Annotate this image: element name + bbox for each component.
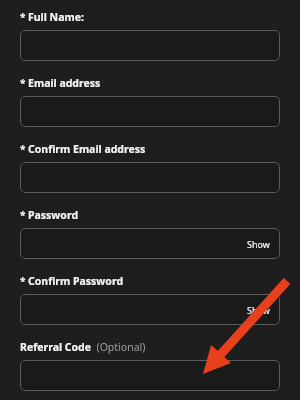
button[interactable]: Show [245, 302, 272, 318]
button[interactable] [20, 30, 280, 61]
button[interactable] [20, 360, 280, 391]
staticText: * Confirm Email address [20, 142, 146, 156]
staticText: Show [247, 238, 270, 250]
staticText: * Confirm Password [20, 274, 124, 288]
button[interactable] [20, 162, 280, 193]
button[interactable]: Show [245, 236, 272, 252]
button[interactable]: Show [20, 294, 280, 325]
staticText: Show [247, 304, 270, 316]
button[interactable] [20, 96, 280, 127]
staticText: * Full Name: [20, 10, 84, 24]
other: Annotation arrow pointing to Referral Co… [200, 278, 290, 378]
staticText: * Email address [20, 76, 101, 90]
button[interactable]: Show [20, 228, 280, 259]
staticText: * Password [20, 208, 79, 222]
staticText: Referral Code (Optional) [20, 340, 146, 354]
